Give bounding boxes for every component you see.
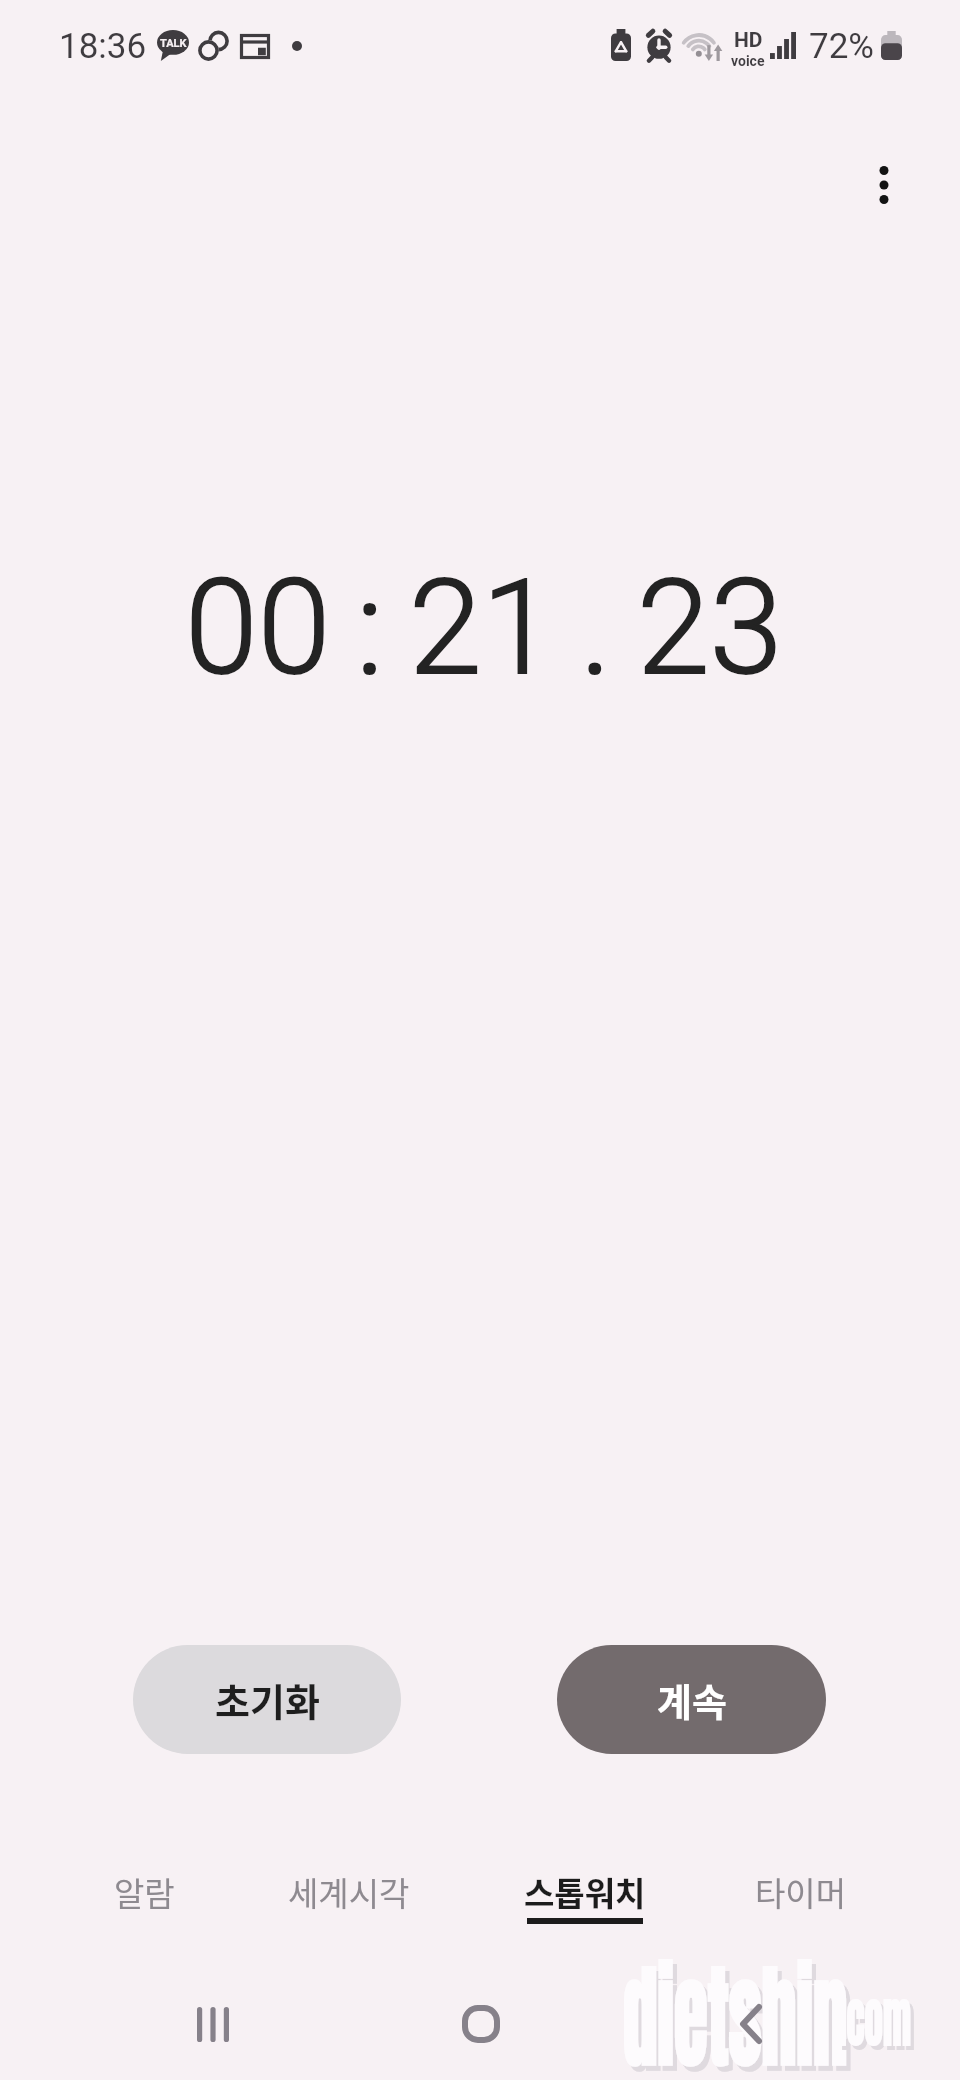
staticText: TALK: [160, 37, 187, 50]
staticText: 계속: [657, 1672, 727, 1727]
staticText: dietshin: [623, 1932, 847, 2080]
staticText: .com: [842, 1978, 915, 2068]
button[interactable]: Recent apps: [154, 1988, 272, 2060]
staticText: .: [580, 551, 612, 705]
staticText: 00: [185, 551, 331, 705]
button[interactable]: 스톱워치: [485, 1868, 685, 1964]
staticText: 알람: [114, 1868, 175, 1916]
staticText: 00: [185, 551, 331, 705]
button[interactable]: 알람: [44, 1868, 244, 1964]
staticText: 타이머: [755, 1868, 847, 1916]
staticText: :: [356, 551, 384, 705]
staticText: 스톱워치: [524, 1868, 646, 1916]
button[interactable]: 초기화: [133, 1645, 401, 1754]
staticText: HD: [734, 28, 763, 53]
button[interactable]: Back: [692, 1988, 810, 2060]
staticText: 초기화: [215, 1672, 320, 1727]
button[interactable]: Home: [422, 1988, 540, 2060]
staticText: dietshin: [627, 1937, 852, 2080]
button[interactable]: 세계시각: [249, 1868, 449, 1964]
staticText: :: [356, 551, 384, 705]
staticText: 21: [409, 551, 555, 705]
staticText: .: [580, 551, 612, 705]
staticText: 18:36: [59, 26, 147, 67]
staticText: 72%: [809, 26, 874, 67]
staticText: 23: [637, 551, 783, 705]
staticText: 21: [409, 551, 555, 705]
button[interactable]: More options: [834, 135, 934, 235]
staticText: voice: [731, 53, 765, 69]
staticText: 세계시각: [288, 1868, 410, 1916]
button[interactable]: 타이머: [701, 1868, 901, 1964]
staticText: .com: [838, 1974, 911, 2064]
staticText: 23: [637, 551, 783, 705]
button[interactable]: 계속: [557, 1645, 826, 1754]
